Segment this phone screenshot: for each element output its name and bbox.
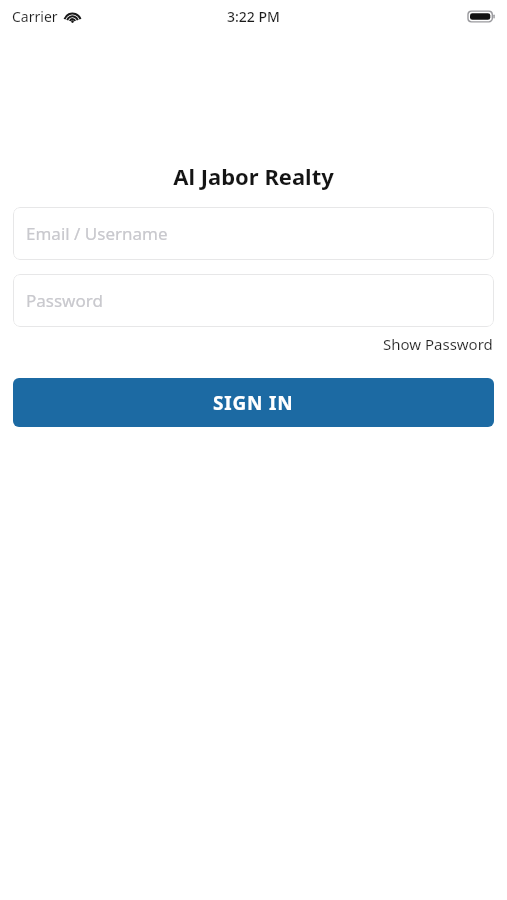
staticText: SIGN IN <box>213 390 294 416</box>
button[interactable]: Show Password <box>382 332 494 356</box>
staticText: Email / Username <box>26 222 168 245</box>
staticText: 3:22 PM <box>227 7 280 26</box>
staticText: Carrier <box>12 7 58 26</box>
button[interactable]: SIGN IN <box>13 378 494 427</box>
staticText: Al Jabor Realty <box>0 161 507 191</box>
button[interactable]: Password <box>13 274 494 327</box>
button[interactable]: Email / Username <box>13 207 494 260</box>
staticText: Password <box>26 289 103 312</box>
staticText: Show Password <box>383 334 493 354</box>
